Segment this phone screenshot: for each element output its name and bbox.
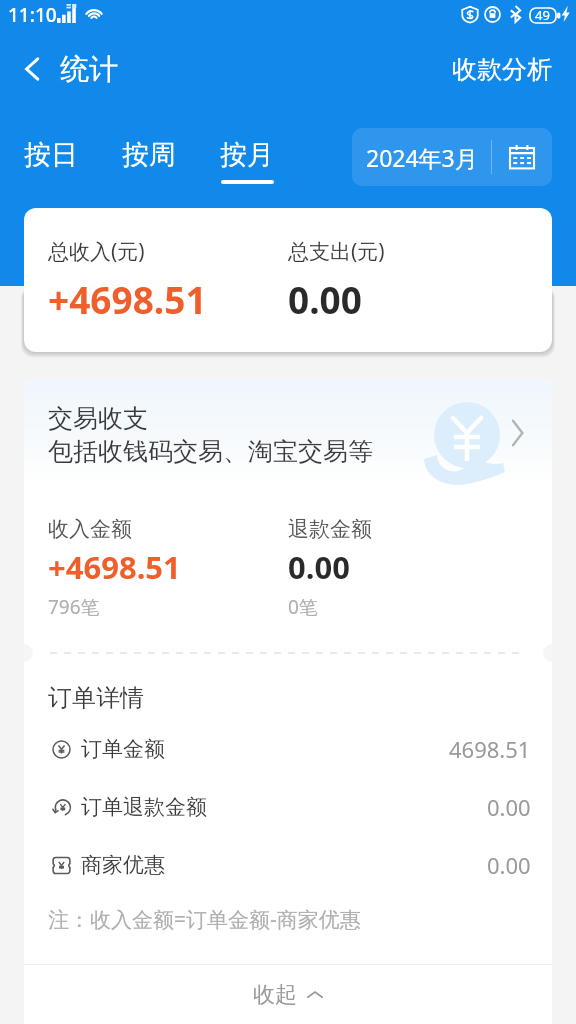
staticText: 0.00 [288,274,362,324]
staticText: 49 [535,6,550,24]
button[interactable]: 按周 [122,138,176,184]
staticText: +4698.51 [48,274,207,324]
staticText: 注：收入金额=订单金额-商家优惠 [48,905,361,934]
other: More [508,416,528,450]
button[interactable]: 2024年3月 [352,128,552,186]
staticText: 收起 [253,981,297,1009]
staticText: 订单金额 [81,736,165,762]
staticText: 0.00 [487,792,531,822]
staticText: 统计 [60,51,118,88]
staticText: 收款分析 [452,54,552,85]
button[interactable]: 总收入(元) [24,208,552,352]
staticText: 2024年3月 [366,142,478,173]
staticText: 0笔 [288,594,318,620]
staticText: 4698.51 [449,734,531,764]
staticText: 总收入(元) [48,237,145,266]
button[interactable]: 交易收支 [24,378,552,485]
staticText: +4698.51 [48,546,181,588]
staticText: 订单退款金额 [81,794,207,820]
staticText: 总支出(元) [288,237,385,266]
staticText: 商家优惠 [81,852,165,878]
staticText: 订单详情 [48,683,144,713]
button[interactable]: 收款分析 [452,48,552,91]
staticText: 按周 [122,138,176,172]
staticText: 796笔 [48,594,100,620]
button[interactable]: 订单退款金额 [24,778,552,836]
button[interactable]: Back [14,51,50,87]
staticText: 按月 [220,138,274,172]
button[interactable]: 订单金额 [24,720,552,778]
staticText: 按日 [24,138,78,172]
button[interactable]: 收起 [24,965,552,1024]
staticText: 退款金额 [288,516,372,542]
other: Choose month [507,142,537,172]
staticText: 0.00 [288,546,350,588]
button[interactable]: 按月 [220,138,274,184]
staticText: 交易收支 [48,403,148,434]
staticText: 0.00 [487,850,531,880]
staticText: 11:10 [8,2,57,28]
button[interactable]: 按日 [24,138,78,184]
staticText: 收入金额 [48,516,132,542]
button[interactable]: 商家优惠 [24,836,552,894]
staticText: 包括收钱码交易、淘宝交易等 [48,436,373,467]
